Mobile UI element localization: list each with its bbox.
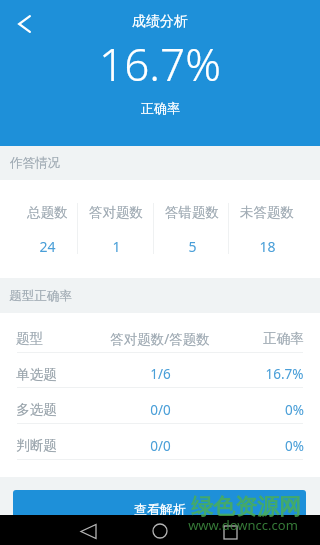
button[interactable]: 答错题数 (154, 180, 230, 278)
button[interactable]: Back (4, 4, 44, 44)
staticText: 0% (285, 437, 304, 455)
staticText: 16.7% (99, 34, 221, 94)
staticText: 题型正确率 (9, 288, 72, 304)
button[interactable]: 未答题数 (229, 180, 305, 278)
staticText: 5 (188, 237, 197, 256)
staticText: 未答题数 (240, 204, 294, 221)
staticText: 答对题数 (89, 204, 143, 221)
staticText: 单选题 (16, 366, 57, 383)
staticText: 16.7% (265, 365, 304, 383)
staticText: 答错题数 (165, 204, 219, 221)
staticText: 0/0 (150, 401, 171, 419)
button[interactable]: 查看解析 (13, 490, 306, 528)
staticText: 判断题 (16, 437, 57, 454)
button[interactable]: 总题数 (9, 180, 85, 278)
staticText: 作答情况 (10, 155, 60, 171)
staticText: 题型 (16, 330, 43, 347)
staticText: 正确率 (263, 330, 304, 347)
staticText: 多选题 (16, 401, 57, 418)
staticText: 24 (39, 237, 56, 256)
button[interactable]: Home (132, 517, 188, 545)
staticText: 答对题数/答题数 (110, 330, 210, 348)
button[interactable]: Back (60, 517, 116, 545)
staticText: 正确率 (141, 100, 180, 116)
staticText: 1/6 (150, 365, 171, 383)
button[interactable]: Recents (202, 518, 258, 545)
staticText: 成绩分析 (132, 13, 188, 31)
staticText: 查看解析 (134, 501, 186, 517)
staticText: 总题数 (27, 204, 68, 221)
button[interactable]: 多选题 (0, 388, 320, 423)
staticText: www.downcc.com (188, 516, 298, 534)
staticText: 绿色资源网 (191, 493, 301, 521)
button[interactable]: 判断题 (0, 424, 320, 459)
button[interactable]: 答对题数 (78, 180, 154, 278)
staticText: 1 (112, 237, 121, 256)
staticText: 0/0 (150, 437, 171, 455)
button[interactable]: 单选题 (0, 353, 320, 387)
staticText: 18 (259, 237, 276, 256)
staticText: 0% (285, 401, 304, 419)
